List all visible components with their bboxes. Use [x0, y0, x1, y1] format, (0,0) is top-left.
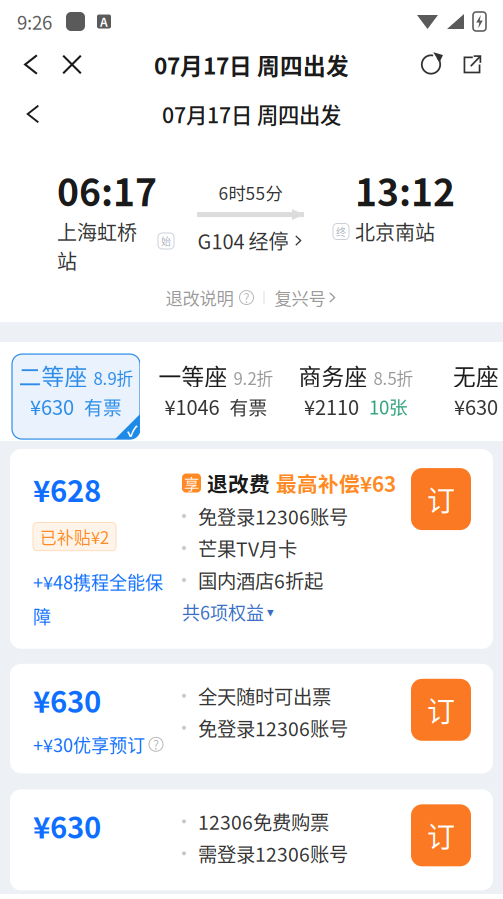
- staticText: 订: [427, 479, 455, 519]
- staticText: 共6项权益: [182, 599, 264, 625]
- staticText: ¥2110: [304, 392, 359, 421]
- button[interactable]: 订: [411, 679, 471, 741]
- staticText: 全天随时可出票: [198, 682, 331, 710]
- button[interactable]: 订: [411, 468, 471, 530]
- staticText: 上海虹桥: [57, 217, 137, 246]
- staticText: 站: [57, 246, 77, 275]
- staticText: 有票: [84, 393, 122, 420]
- staticText: 无座: [453, 359, 499, 392]
- staticText: G104 经停: [197, 226, 288, 255]
- staticText: 12306免费购票: [198, 807, 329, 835]
- button[interactable]: Back: [14, 86, 52, 142]
- staticText: 免登录12306账号: [198, 502, 348, 530]
- staticText: ¥630: [33, 804, 101, 847]
- staticText: 07月17日 周四出发: [162, 99, 341, 129]
- staticText: 商务座: [298, 359, 367, 392]
- staticText: ¥628: [33, 468, 101, 511]
- staticText: 9.2折: [233, 366, 273, 390]
- staticText: 6时55分: [218, 180, 282, 205]
- button[interactable]: 共6项权益: [182, 599, 274, 625]
- button[interactable]: 退改说明: [165, 285, 253, 310]
- staticText: 障: [33, 603, 51, 629]
- staticText: 北京南站: [355, 217, 435, 246]
- staticText: 享: [184, 472, 199, 494]
- staticText: 07月17日 周四出发: [154, 48, 349, 81]
- button[interactable]: 二等座: [12, 354, 140, 439]
- staticText: 终: [336, 224, 346, 239]
- staticText: ¥1046: [164, 392, 219, 421]
- staticText: 最高补偿¥63: [276, 468, 396, 498]
- staticText: 始: [161, 234, 171, 248]
- button[interactable]: Refresh: [409, 43, 453, 86]
- staticText: 已补贴¥2: [40, 525, 109, 549]
- button[interactable]: Share: [453, 43, 491, 86]
- staticText: ¥630: [454, 392, 498, 421]
- button[interactable]: 订: [411, 804, 471, 866]
- staticText: +¥30优享预订: [33, 731, 145, 757]
- staticText: 8.5折: [373, 366, 413, 390]
- staticText: 一等座: [158, 359, 227, 392]
- staticText: 06:17: [57, 163, 157, 217]
- staticText: 8.9折: [93, 366, 133, 390]
- staticText: 订: [427, 815, 455, 856]
- button[interactable]: 商务座: [292, 354, 420, 439]
- staticText: 有票: [229, 393, 267, 420]
- button[interactable]: Close: [50, 43, 94, 86]
- staticText: 9:26: [17, 8, 52, 35]
- staticText: ▾: [267, 604, 274, 620]
- staticText: 二等座: [18, 359, 87, 392]
- staticText: ¥630: [30, 392, 74, 421]
- staticText: A: [100, 13, 108, 30]
- button[interactable]: Back: [12, 43, 50, 86]
- staticText: 免登录12306账号: [198, 714, 348, 742]
- staticText: ✓: [127, 420, 138, 441]
- button[interactable]: 无座: [420, 354, 503, 439]
- staticText: 10张: [369, 393, 408, 420]
- staticText: 13:12: [355, 163, 455, 217]
- staticText: +¥48携程全能保: [33, 569, 163, 595]
- staticText: 需登录12306账号: [198, 839, 348, 867]
- staticText: 芒果TV月卡: [198, 534, 297, 562]
- button[interactable]: 复兴号: [274, 285, 337, 310]
- staticText: ?: [243, 288, 249, 307]
- button[interactable]: 一等座: [140, 354, 292, 439]
- staticText: 复兴号: [274, 285, 325, 310]
- staticText: 退改说明: [165, 285, 233, 310]
- staticText: 国内酒店6折起: [198, 566, 323, 594]
- staticText: ?: [153, 735, 159, 753]
- staticText: 订: [427, 689, 455, 730]
- staticText: ¥630: [33, 679, 101, 721]
- staticText: 退改费: [207, 468, 270, 498]
